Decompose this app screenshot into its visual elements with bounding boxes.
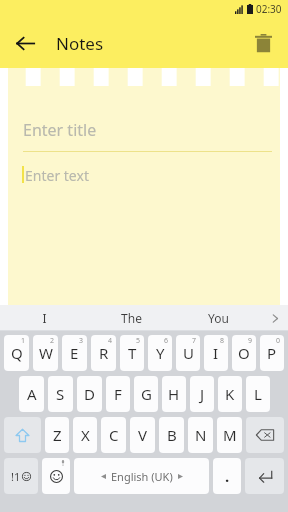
staticText: You (208, 310, 229, 326)
staticText: F (114, 384, 122, 404)
button[interactable]: C (101, 417, 126, 453)
staticText: O (238, 343, 250, 363)
button[interactable]: Emoji (42, 458, 70, 494)
staticText: V (138, 425, 148, 445)
staticText: Z (53, 425, 62, 445)
staticText: Y (156, 343, 165, 363)
staticText: U (183, 343, 194, 363)
staticText: 8 (220, 336, 225, 346)
button[interactable]: More suggestions (262, 305, 288, 331)
staticText: H (168, 384, 180, 404)
staticText: M (223, 425, 237, 445)
button[interactable]: Delete note (246, 26, 280, 60)
staticText: L (254, 384, 262, 404)
button[interactable]: V (130, 417, 155, 453)
button[interactable]: U (176, 335, 200, 371)
staticText: 6 (164, 336, 169, 346)
button[interactable]: G (134, 376, 158, 412)
button[interactable]: L (246, 376, 270, 412)
staticText: G (141, 384, 152, 404)
button[interactable]: K (218, 376, 242, 412)
button[interactable]: Symbols (4, 458, 38, 494)
staticText: The (121, 310, 142, 326)
staticText: 3 (79, 336, 84, 346)
staticText: P (267, 343, 277, 363)
button[interactable]: A (19, 376, 44, 412)
button[interactable]: R (91, 335, 116, 371)
button[interactable]: Enter text (8, 166, 280, 185)
button[interactable]: Y (148, 335, 172, 371)
button[interactable]: The (88, 305, 175, 331)
button[interactable]: J (190, 376, 214, 412)
button[interactable]: X (73, 417, 97, 453)
button[interactable]: Q (4, 335, 29, 371)
button[interactable]: S (48, 376, 73, 412)
button[interactable]: N (188, 417, 213, 453)
button[interactable]: D (77, 376, 102, 412)
staticText: !1 (11, 469, 21, 484)
button[interactable]: English (UK) (74, 458, 209, 494)
button[interactable]: I (204, 335, 228, 371)
button[interactable]: H (162, 376, 186, 412)
button[interactable]: O (232, 335, 256, 371)
staticText: N (195, 425, 207, 445)
button[interactable]: E (62, 335, 87, 371)
button[interactable]: W (33, 335, 58, 371)
button[interactable]: T (120, 335, 144, 371)
staticText: D (84, 384, 95, 404)
staticText: 2 (50, 336, 55, 346)
button[interactable]: Back (8, 26, 42, 60)
button[interactable]: . (213, 458, 241, 494)
staticText: S (56, 384, 65, 404)
staticText: . (225, 466, 230, 486)
button[interactable]: M (217, 417, 242, 453)
staticText: 5 (136, 336, 141, 346)
staticText: C (109, 425, 119, 445)
staticText: 4 (108, 336, 113, 346)
button[interactable]: P (260, 335, 284, 371)
staticText: J (200, 384, 205, 404)
staticText: K (225, 384, 235, 404)
staticText: 9 (248, 336, 253, 346)
staticText: W (39, 343, 53, 363)
staticText: Q (11, 343, 23, 363)
staticText: English (UK) (111, 469, 173, 484)
staticText: Notes (56, 32, 104, 55)
button[interactable]: Enter title (23, 119, 265, 141)
staticText: I (42, 310, 47, 326)
button[interactable]: Enter (245, 458, 284, 494)
staticText: 02:30 (256, 2, 282, 16)
staticText: B (167, 425, 177, 445)
staticText: E (70, 343, 79, 363)
button[interactable]: B (159, 417, 184, 453)
button[interactable]: I (0, 305, 88, 331)
staticText: I (213, 343, 219, 363)
staticText: Enter title (23, 119, 97, 141)
staticText: 1 (21, 336, 26, 346)
button[interactable]: Shift (4, 417, 41, 453)
staticText: T (128, 343, 137, 363)
staticText: Enter text (25, 166, 89, 185)
staticText: 7 (192, 336, 197, 346)
staticText: A (27, 384, 37, 404)
staticText: 0 (276, 336, 281, 346)
button[interactable]: You (175, 305, 262, 331)
button[interactable]: F (106, 376, 130, 412)
staticText: R (99, 343, 109, 363)
staticText: X (81, 425, 90, 445)
button[interactable]: Z (45, 417, 69, 453)
button[interactable]: Backspace (246, 417, 284, 453)
